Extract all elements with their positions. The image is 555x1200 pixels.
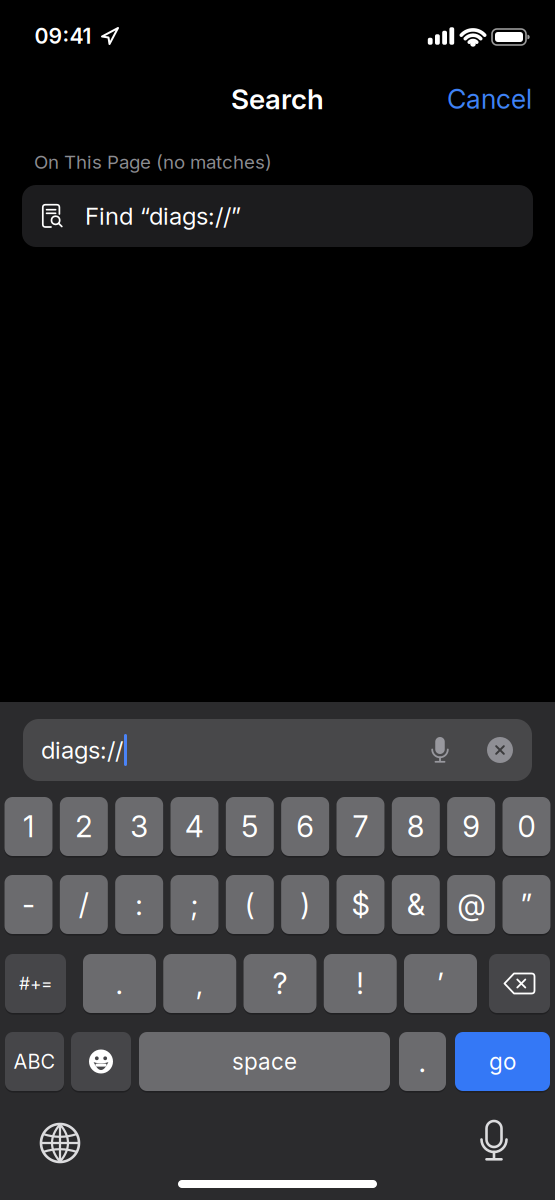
staticText: : <box>135 887 143 922</box>
button[interactable]: - <box>4 875 52 934</box>
button[interactable]: @ <box>447 875 495 934</box>
staticText: diags:// <box>41 736 123 764</box>
button[interactable]: 6 <box>281 797 329 856</box>
staticText: 0 <box>517 809 535 844</box>
staticText: 4 <box>185 809 204 844</box>
button[interactable]: Emoji <box>71 1032 131 1091</box>
staticText: ( <box>245 887 255 922</box>
button[interactable]: ” <box>502 875 550 934</box>
button[interactable]: Dictate <box>429 737 451 763</box>
button[interactable]: ; <box>170 875 218 934</box>
button[interactable]: 4 <box>170 797 218 856</box>
button[interactable]: Next keyboard <box>41 1124 79 1162</box>
staticText: $ <box>351 887 369 922</box>
button[interactable]: ? <box>243 954 316 1013</box>
staticText: & <box>407 887 425 922</box>
button[interactable]: : <box>115 875 163 934</box>
button[interactable]: Cancel <box>447 83 532 115</box>
button[interactable]: space <box>139 1032 390 1091</box>
button[interactable]: 8 <box>392 797 440 856</box>
button[interactable]: go <box>455 1032 550 1091</box>
staticText: go <box>489 1048 516 1075</box>
staticText: #+= <box>19 973 52 994</box>
staticText: Find “diags://” <box>85 202 241 230</box>
staticText: . <box>115 966 123 1001</box>
button[interactable]: $ <box>336 875 384 934</box>
button[interactable]: 9 <box>447 797 495 856</box>
button[interactable]: . <box>399 1032 446 1091</box>
staticText: ’ <box>437 966 444 1001</box>
staticText: 2 <box>75 809 92 844</box>
staticText: ) <box>300 887 310 922</box>
staticText: / <box>79 887 89 922</box>
staticText: 9 <box>462 809 480 844</box>
button[interactable]: ( <box>226 875 274 934</box>
button[interactable]: ’ <box>404 954 477 1013</box>
button[interactable]: 3 <box>115 797 163 856</box>
button[interactable]: Find “diags://” <box>22 185 533 247</box>
button[interactable]: & <box>392 875 440 934</box>
staticText: - <box>22 887 35 922</box>
staticText: 09:41 <box>34 23 91 49</box>
staticText: , <box>196 966 204 1001</box>
staticText: 5 <box>241 809 258 844</box>
staticText: Search <box>231 82 324 115</box>
staticText: ABC <box>13 1050 55 1073</box>
button[interactable]: . <box>83 954 156 1013</box>
staticText: ” <box>520 887 532 922</box>
staticText: . <box>418 1044 426 1079</box>
button[interactable]: ABC <box>5 1032 64 1091</box>
button[interactable]: 5 <box>226 797 274 856</box>
button[interactable]: , <box>163 954 236 1013</box>
button[interactable]: ! <box>324 954 397 1013</box>
staticText: On This Page (no matches) <box>34 151 272 173</box>
button[interactable]: #+= <box>5 954 66 1013</box>
staticText: Cancel <box>447 83 532 115</box>
staticText: @ <box>457 887 485 922</box>
staticText: ; <box>190 887 198 922</box>
staticText: 8 <box>407 809 425 844</box>
staticText: ! <box>356 966 364 1001</box>
button[interactable]: 0 <box>502 797 550 856</box>
button[interactable]: ) <box>281 875 329 934</box>
staticText: space <box>232 1048 297 1075</box>
button[interactable]: 1 <box>4 797 52 856</box>
staticText: 7 <box>352 809 368 844</box>
button[interactable]: Clear text <box>487 737 513 763</box>
button[interactable]: Delete <box>489 954 550 1013</box>
staticText: ? <box>272 966 287 1001</box>
button[interactable]: / <box>60 875 108 934</box>
button[interactable]: 7 <box>336 797 384 856</box>
staticText: 3 <box>130 809 148 844</box>
staticText: 6 <box>296 809 314 844</box>
button[interactable]: 2 <box>60 797 108 856</box>
staticText: 1 <box>23 809 34 844</box>
button[interactable]: Dictation <box>478 1121 510 1161</box>
